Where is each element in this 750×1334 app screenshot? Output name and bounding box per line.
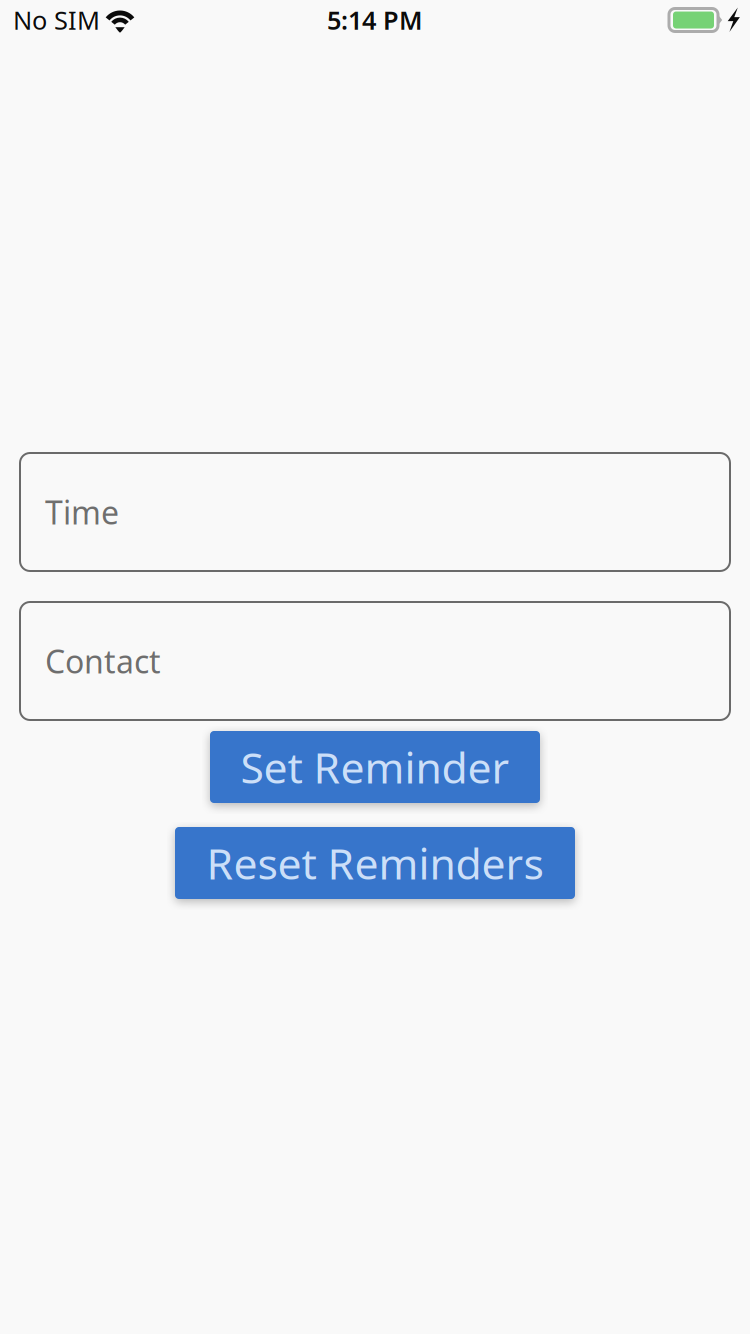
staticText: Time — [45, 491, 119, 533]
staticText: 5:14 PM — [327, 3, 423, 37]
button[interactable]: Time — [20, 453, 730, 571]
staticText: Contact — [45, 640, 161, 682]
staticText: Set Reminder — [240, 739, 509, 795]
button[interactable]: Reset Reminders — [175, 827, 575, 899]
button[interactable]: Contact — [20, 602, 730, 720]
button[interactable]: Set Reminder — [210, 731, 540, 803]
staticText: No SIM — [13, 3, 100, 37]
staticText: Reset Reminders — [206, 835, 543, 891]
